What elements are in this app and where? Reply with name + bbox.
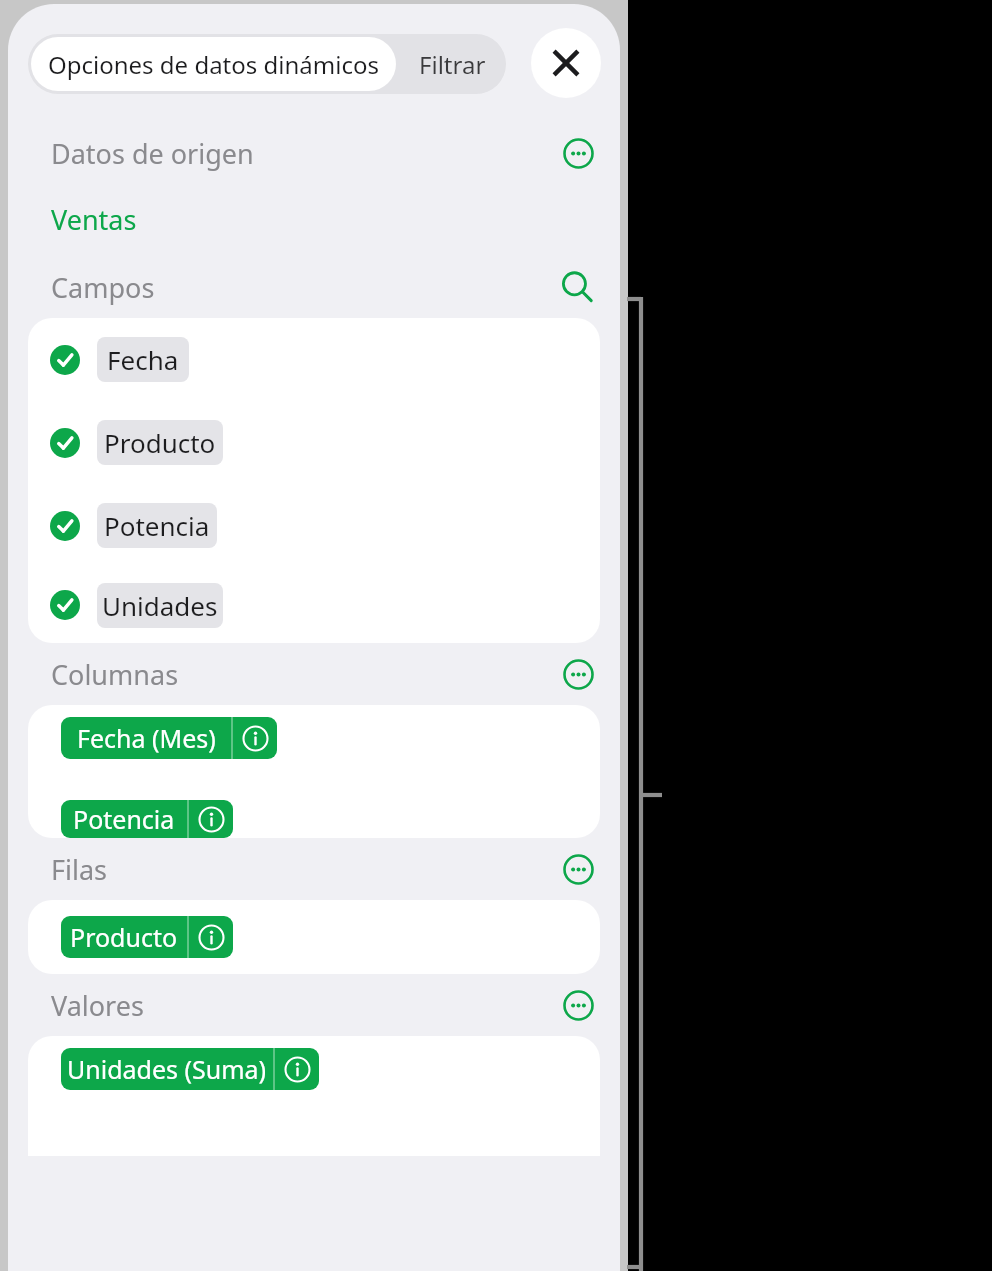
button[interactable]: Cerrar <box>531 28 601 98</box>
button[interactable]: Opciones de valores <box>558 985 598 1025</box>
button[interactable]: Potencia <box>28 484 600 567</box>
staticText: Opciones de datos dinámicos <box>48 48 379 81</box>
staticText: Unidades (Suma) <box>67 1052 267 1086</box>
button[interactable]: Fecha <box>28 318 600 401</box>
button[interactable]: Opciones de datos dinámicos <box>31 37 396 91</box>
staticText: Datos de origen <box>51 135 254 172</box>
staticText: Ventas <box>51 201 137 238</box>
button[interactable]: Opciones de datos de origen <box>558 133 598 173</box>
button[interactable]: Fecha (Mes) <box>61 717 277 759</box>
staticText: Potencia <box>73 802 175 836</box>
button[interactable]: Potencia <box>61 800 233 838</box>
staticText: Valores <box>51 987 144 1024</box>
staticText: Unidades <box>102 588 218 623</box>
button[interactable]: Buscar <box>556 266 598 308</box>
button[interactable]: Ventas <box>8 182 620 256</box>
staticText: Campos <box>51 269 155 306</box>
button[interactable]: Opciones de filas <box>558 849 598 889</box>
button[interactable]: Unidades <box>28 567 600 643</box>
staticText: Filas <box>51 851 108 888</box>
button[interactable]: Producto <box>61 916 233 958</box>
staticText: Columnas <box>51 656 179 693</box>
staticText: Producto <box>104 425 216 460</box>
button[interactable]: Filtrar <box>399 34 506 94</box>
staticText: Fecha (Mes) <box>77 721 216 755</box>
staticText: Potencia <box>104 508 210 543</box>
button[interactable]: Unidades (Suma) <box>61 1048 319 1090</box>
staticText: Fecha <box>107 342 179 377</box>
button[interactable]: Producto <box>28 401 600 484</box>
staticText: Filtrar <box>419 48 486 81</box>
staticText: Producto <box>70 920 178 954</box>
button[interactable]: Opciones de columnas <box>558 654 598 694</box>
